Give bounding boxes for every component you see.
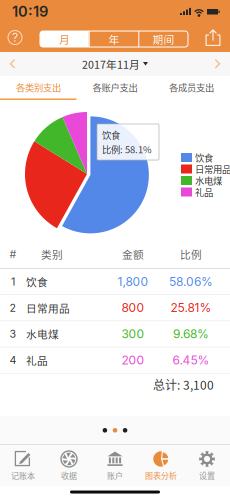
staticText: 礼品: [26, 352, 48, 368]
staticText: 礼品: [195, 185, 213, 199]
button[interactable]: 各账户支出: [77, 76, 153, 100]
staticText: 总计: 3,100: [153, 376, 214, 393]
staticText: 2: [9, 301, 16, 314]
button[interactable]: Share: [200, 23, 226, 52]
button[interactable]: 记账本: [0, 445, 46, 486]
staticText: 1,800: [117, 274, 148, 289]
staticText: 设置: [199, 469, 215, 481]
staticText: 水电煤: [195, 174, 222, 187]
staticText: ?: [12, 30, 18, 45]
button[interactable]: 收据: [46, 445, 92, 486]
staticText: 比例: [180, 246, 202, 262]
staticText: 800: [121, 300, 144, 315]
staticText: 4: [9, 354, 16, 367]
staticText: 各账户支出: [92, 80, 137, 94]
staticText: 各成员支出: [169, 80, 214, 94]
staticText: 收据: [61, 469, 77, 481]
staticText: 记账本: [11, 469, 35, 481]
staticText: 月: [59, 31, 70, 47]
staticText: 300: [121, 327, 144, 341]
staticText: 9.68%: [173, 327, 209, 341]
staticText: 金额: [122, 246, 144, 262]
staticText: 6.45%: [172, 353, 209, 367]
button[interactable]: 3: [0, 321, 230, 347]
staticText: 10:19: [12, 3, 48, 20]
button[interactable]: 2017年11月: [82, 52, 148, 76]
button[interactable]: 设置: [184, 445, 230, 486]
staticText: 各类别支出: [16, 80, 61, 94]
button[interactable]: 年: [90, 31, 138, 47]
staticText: 3: [9, 327, 16, 340]
button[interactable]: Next month: [205, 52, 230, 76]
button[interactable]: 账户: [92, 445, 138, 486]
button[interactable]: 月: [40, 31, 89, 47]
staticText: 图表分析: [145, 469, 177, 481]
staticText: #: [9, 247, 16, 260]
staticText: 期间: [153, 31, 175, 47]
staticText: 饮食: [102, 128, 120, 141]
button[interactable]: Help: [0, 23, 30, 52]
staticText: 比例: 58.1%: [102, 142, 152, 156]
button[interactable]: 2: [0, 295, 230, 320]
staticText: 饮食: [26, 274, 48, 289]
staticText: 58.06%: [169, 274, 213, 289]
staticText: 类别: [41, 246, 63, 262]
button[interactable]: 各成员支出: [153, 76, 230, 100]
staticText: 2017年11月: [82, 56, 140, 72]
staticText: 账户: [107, 469, 123, 481]
button[interactable]: 1: [0, 269, 230, 294]
staticText: 25.81%: [170, 300, 211, 315]
button[interactable]: 4: [0, 347, 230, 373]
button[interactable]: 图表分析: [138, 445, 184, 486]
staticText: 饮食: [195, 151, 213, 164]
staticText: 水电煤: [26, 326, 59, 342]
button[interactable]: 期间: [139, 31, 188, 47]
staticText: 1: [11, 275, 15, 288]
staticText: 年: [108, 31, 119, 47]
button[interactable]: Previous month: [0, 52, 25, 76]
button[interactable]: 各类别支出: [0, 76, 77, 100]
staticText: 200: [121, 353, 144, 367]
staticText: 日常用品: [26, 300, 70, 315]
staticText: 日常用品: [195, 162, 230, 176]
